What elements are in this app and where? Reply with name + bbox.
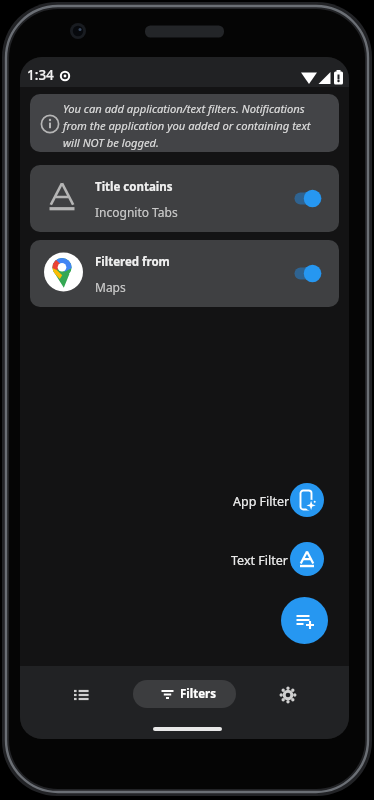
staticText: 1:34 xyxy=(27,66,54,84)
button[interactable] xyxy=(281,597,328,644)
button[interactable]: Filtered from xyxy=(30,240,339,307)
staticText: will NOT be logged. xyxy=(63,135,159,150)
button[interactable] xyxy=(54,675,94,715)
staticText: App Filter xyxy=(233,493,290,510)
button[interactable]: Title contains xyxy=(30,165,339,232)
staticText: from the application you added or contai… xyxy=(63,118,311,133)
staticText: Text Filter xyxy=(231,552,288,569)
staticText: Maps xyxy=(95,279,126,295)
staticText: Filters xyxy=(180,686,216,702)
button[interactable]: Filters xyxy=(133,680,236,708)
button[interactable] xyxy=(290,483,324,517)
button[interactable] xyxy=(288,257,328,290)
staticText: Filtered from xyxy=(95,254,170,270)
button[interactable] xyxy=(290,542,324,576)
button[interactable] xyxy=(268,675,308,715)
staticText: Incognito Tabs xyxy=(95,204,178,220)
staticText: Title contains xyxy=(95,179,173,195)
staticText: You can add application/text filters. No… xyxy=(63,101,305,116)
button[interactable] xyxy=(288,182,328,215)
